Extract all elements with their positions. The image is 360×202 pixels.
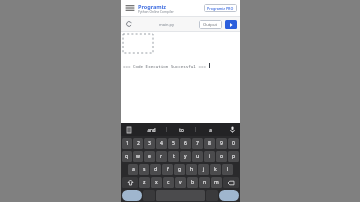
staticText: 3 bbox=[148, 140, 151, 147]
button[interactable]: s bbox=[139, 164, 149, 175]
staticText: 2 bbox=[137, 140, 140, 147]
staticText: Python Online Compiler bbox=[138, 10, 174, 14]
staticText: g bbox=[178, 166, 182, 173]
button[interactable]: 8 bbox=[204, 138, 215, 149]
staticText: Programiz PRO bbox=[207, 6, 234, 11]
button[interactable]: 2 bbox=[133, 138, 143, 149]
button[interactable]: a bbox=[128, 164, 138, 175]
button[interactable]: 1 bbox=[122, 138, 132, 149]
button[interactable]: i bbox=[204, 151, 215, 162]
button[interactable]: k bbox=[210, 164, 221, 175]
staticText: z bbox=[143, 179, 146, 186]
staticText: 6 bbox=[184, 140, 187, 147]
staticText: Output bbox=[203, 22, 218, 28]
staticText: o bbox=[220, 153, 224, 160]
button[interactable]: Programiz PRO bbox=[204, 4, 237, 12]
staticText: u bbox=[196, 153, 200, 160]
staticText: 5 bbox=[172, 140, 175, 147]
button[interactable]: 3 bbox=[144, 138, 155, 149]
button[interactable]: 0 bbox=[228, 138, 239, 149]
staticText: Programiz bbox=[138, 3, 167, 10]
button[interactable]: w bbox=[133, 151, 143, 162]
button[interactable]: Shift bbox=[122, 177, 138, 188]
button[interactable]: b bbox=[187, 177, 198, 188]
staticText: r bbox=[160, 153, 163, 160]
button[interactable]: z bbox=[139, 177, 150, 188]
staticText: f bbox=[167, 166, 169, 173]
button[interactable]: p bbox=[228, 151, 239, 162]
staticText: 4 bbox=[160, 140, 163, 147]
staticText: w bbox=[136, 153, 140, 160]
staticText: 7 bbox=[196, 140, 199, 147]
staticText: s bbox=[143, 166, 146, 173]
staticText: e bbox=[148, 153, 151, 160]
button[interactable]: and bbox=[137, 123, 166, 136]
staticText: 0 bbox=[232, 140, 235, 147]
button[interactable]: c bbox=[163, 177, 174, 188]
button[interactable]: Backspace bbox=[223, 177, 239, 188]
button[interactable]: Run bbox=[225, 20, 237, 29]
button[interactable]: x bbox=[151, 177, 162, 188]
staticText: v bbox=[179, 179, 182, 186]
staticText: 9 bbox=[220, 140, 223, 147]
button[interactable]: Clipboard bbox=[121, 123, 137, 136]
button[interactable]: main.py bbox=[157, 22, 176, 27]
button[interactable]: Menu bbox=[124, 2, 136, 14]
button[interactable]: h bbox=[186, 164, 197, 175]
button[interactable]: Output bbox=[199, 20, 222, 29]
staticText: h bbox=[190, 166, 194, 173]
button[interactable]: q bbox=[122, 151, 132, 162]
button[interactable]: r bbox=[156, 151, 167, 162]
button[interactable]: j bbox=[198, 164, 209, 175]
staticText: 8 bbox=[208, 140, 211, 147]
button[interactable]: y bbox=[180, 151, 191, 162]
staticText: y bbox=[184, 153, 187, 160]
staticText: k bbox=[214, 166, 217, 173]
staticText: a bbox=[209, 127, 212, 133]
button[interactable]: n bbox=[199, 177, 210, 188]
staticText: c bbox=[167, 179, 170, 186]
staticText: m bbox=[214, 179, 219, 186]
button[interactable]: l bbox=[222, 164, 233, 175]
staticText: j bbox=[203, 166, 205, 173]
button[interactable]: v bbox=[175, 177, 186, 188]
button[interactable]: f bbox=[162, 164, 173, 175]
staticText: a bbox=[132, 166, 135, 173]
staticText: p bbox=[232, 153, 236, 160]
button[interactable]: t bbox=[168, 151, 179, 162]
button[interactable]: o bbox=[216, 151, 227, 162]
button[interactable]: to bbox=[167, 123, 195, 136]
staticText: b bbox=[191, 179, 195, 186]
button[interactable]: d bbox=[150, 164, 161, 175]
button[interactable]: m bbox=[211, 177, 222, 188]
staticText: i bbox=[209, 153, 211, 160]
button[interactable]: u bbox=[192, 151, 203, 162]
button[interactable]: e bbox=[144, 151, 155, 162]
staticText: d bbox=[154, 166, 158, 173]
button[interactable]: 4 bbox=[156, 138, 167, 149]
staticText: === Code Execution Successful === bbox=[123, 64, 206, 70]
staticText: n bbox=[203, 179, 207, 186]
button[interactable]: 9 bbox=[216, 138, 227, 149]
button[interactable]: Enter bbox=[219, 190, 239, 201]
button[interactable]: Reset bbox=[124, 19, 134, 29]
staticText: x bbox=[155, 179, 158, 186]
staticText: q bbox=[125, 153, 129, 160]
button[interactable]: 7 bbox=[192, 138, 203, 149]
button[interactable]: g bbox=[174, 164, 185, 175]
button[interactable]: a bbox=[196, 123, 224, 136]
staticText: and bbox=[147, 127, 156, 133]
staticText: t bbox=[173, 153, 175, 160]
staticText: to bbox=[179, 127, 184, 133]
button[interactable]: Voice input bbox=[224, 123, 240, 136]
button[interactable]: 6 bbox=[180, 138, 191, 149]
staticText: 1 bbox=[126, 140, 129, 147]
button[interactable]: 5 bbox=[168, 138, 179, 149]
staticText: l bbox=[227, 166, 229, 173]
button[interactable]: Symbols bbox=[122, 190, 142, 201]
